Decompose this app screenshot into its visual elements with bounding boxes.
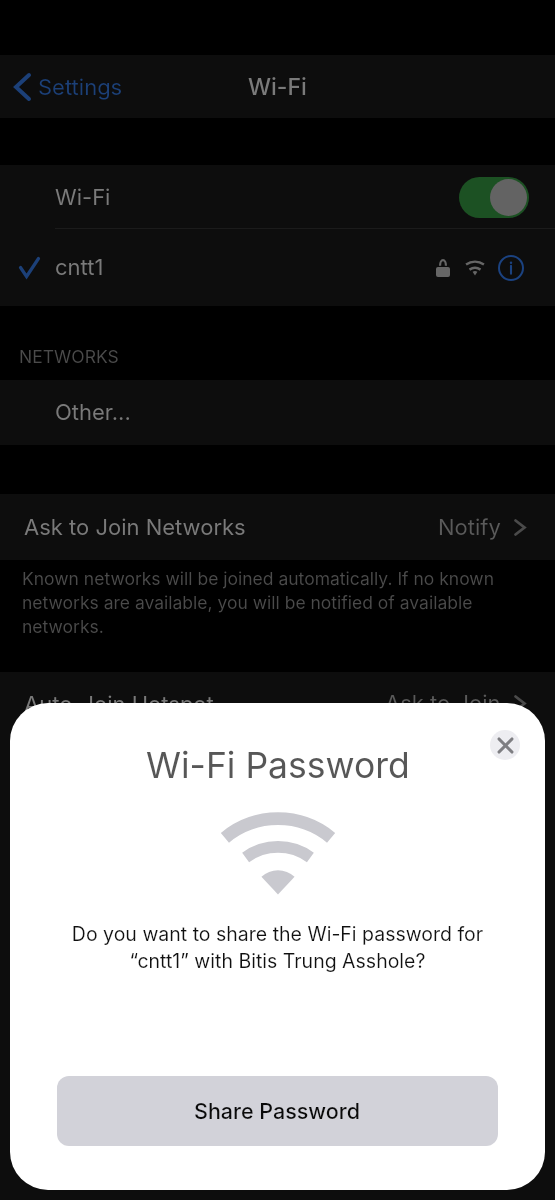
staticText: Wi-Fi: [248, 73, 307, 101]
button[interactable]: Auto-Join Hotspot: [0, 672, 555, 1200]
staticText: Notify: [438, 514, 501, 541]
button[interactable]: Ask to Join Networks: [0, 494, 555, 560]
button[interactable]: Wi-Fi: [0, 165, 555, 229]
button[interactable]: Share Password: [57, 1076, 498, 1146]
button[interactable]: [459, 177, 529, 218]
button[interactable]: Settings: [0, 67, 133, 107]
button[interactable]: cntt1: [0, 229, 555, 306]
staticText: Share Password: [194, 1098, 361, 1124]
button[interactable]: Other...: [0, 380, 555, 445]
staticText: Do you want to share the Wi-Fi password …: [10, 922, 545, 972]
staticText: NETWORKS: [19, 346, 119, 367]
staticText: Known networks will be joined automatica…: [22, 568, 525, 637]
staticText: Wi-Fi: [55, 184, 111, 211]
button[interactable]: Close: [490, 730, 520, 760]
staticText: cntt1: [55, 254, 104, 281]
staticText: Wi-Fi Password: [146, 744, 410, 787]
staticText: Settings: [38, 74, 123, 101]
staticText: Ask to Join Networks: [24, 514, 246, 541]
staticText: Auto-Join Hotspot: [24, 691, 214, 718]
staticText: Other...: [55, 399, 131, 426]
staticText: Ask to Join: [385, 690, 501, 717]
